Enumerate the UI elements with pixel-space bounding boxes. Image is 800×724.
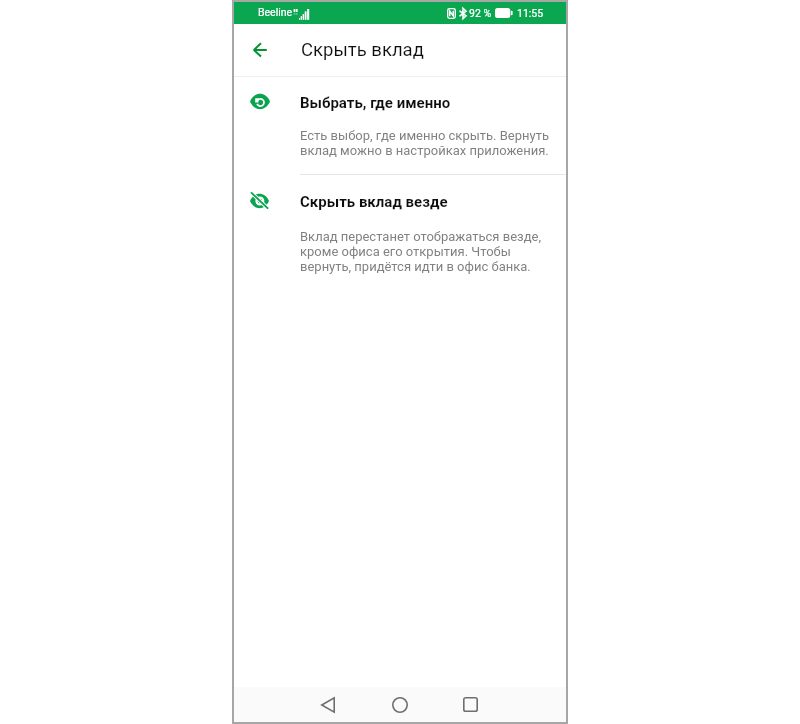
staticText: Есть выбор, где именно скрыть. Вернуть в… — [300, 128, 552, 158]
staticText: 11:55 — [517, 7, 544, 19]
staticText: Скрыть вклад везде — [300, 193, 448, 211]
staticText: Вклад перестанет отображаться везде, кро… — [300, 229, 552, 274]
button[interactable]: Recent apps — [454, 687, 486, 722]
staticText: Выбрать, где именно — [300, 94, 451, 112]
staticText: 92 % — [469, 7, 492, 19]
staticText: Скрыть вклад — [301, 39, 424, 61]
button[interactable]: Home — [384, 687, 416, 722]
button[interactable]: Выбрать, где именно — [234, 78, 566, 176]
button[interactable]: Back — [240, 30, 280, 70]
button[interactable]: Back — [312, 687, 344, 722]
staticText: Beeline — [258, 6, 293, 18]
button[interactable]: Скрыть вклад везде — [234, 177, 566, 292]
